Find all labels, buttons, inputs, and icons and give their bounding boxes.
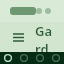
staticText: Garden bbox=[35, 22, 55, 52]
button[interactable]: Water bbox=[32, 52, 48, 64]
button[interactable]: Plants bbox=[16, 52, 32, 64]
button[interactable]: Profile bbox=[48, 52, 64, 64]
button[interactable]: Menu bbox=[9, 28, 27, 46]
button[interactable]: Home bbox=[0, 52, 16, 64]
